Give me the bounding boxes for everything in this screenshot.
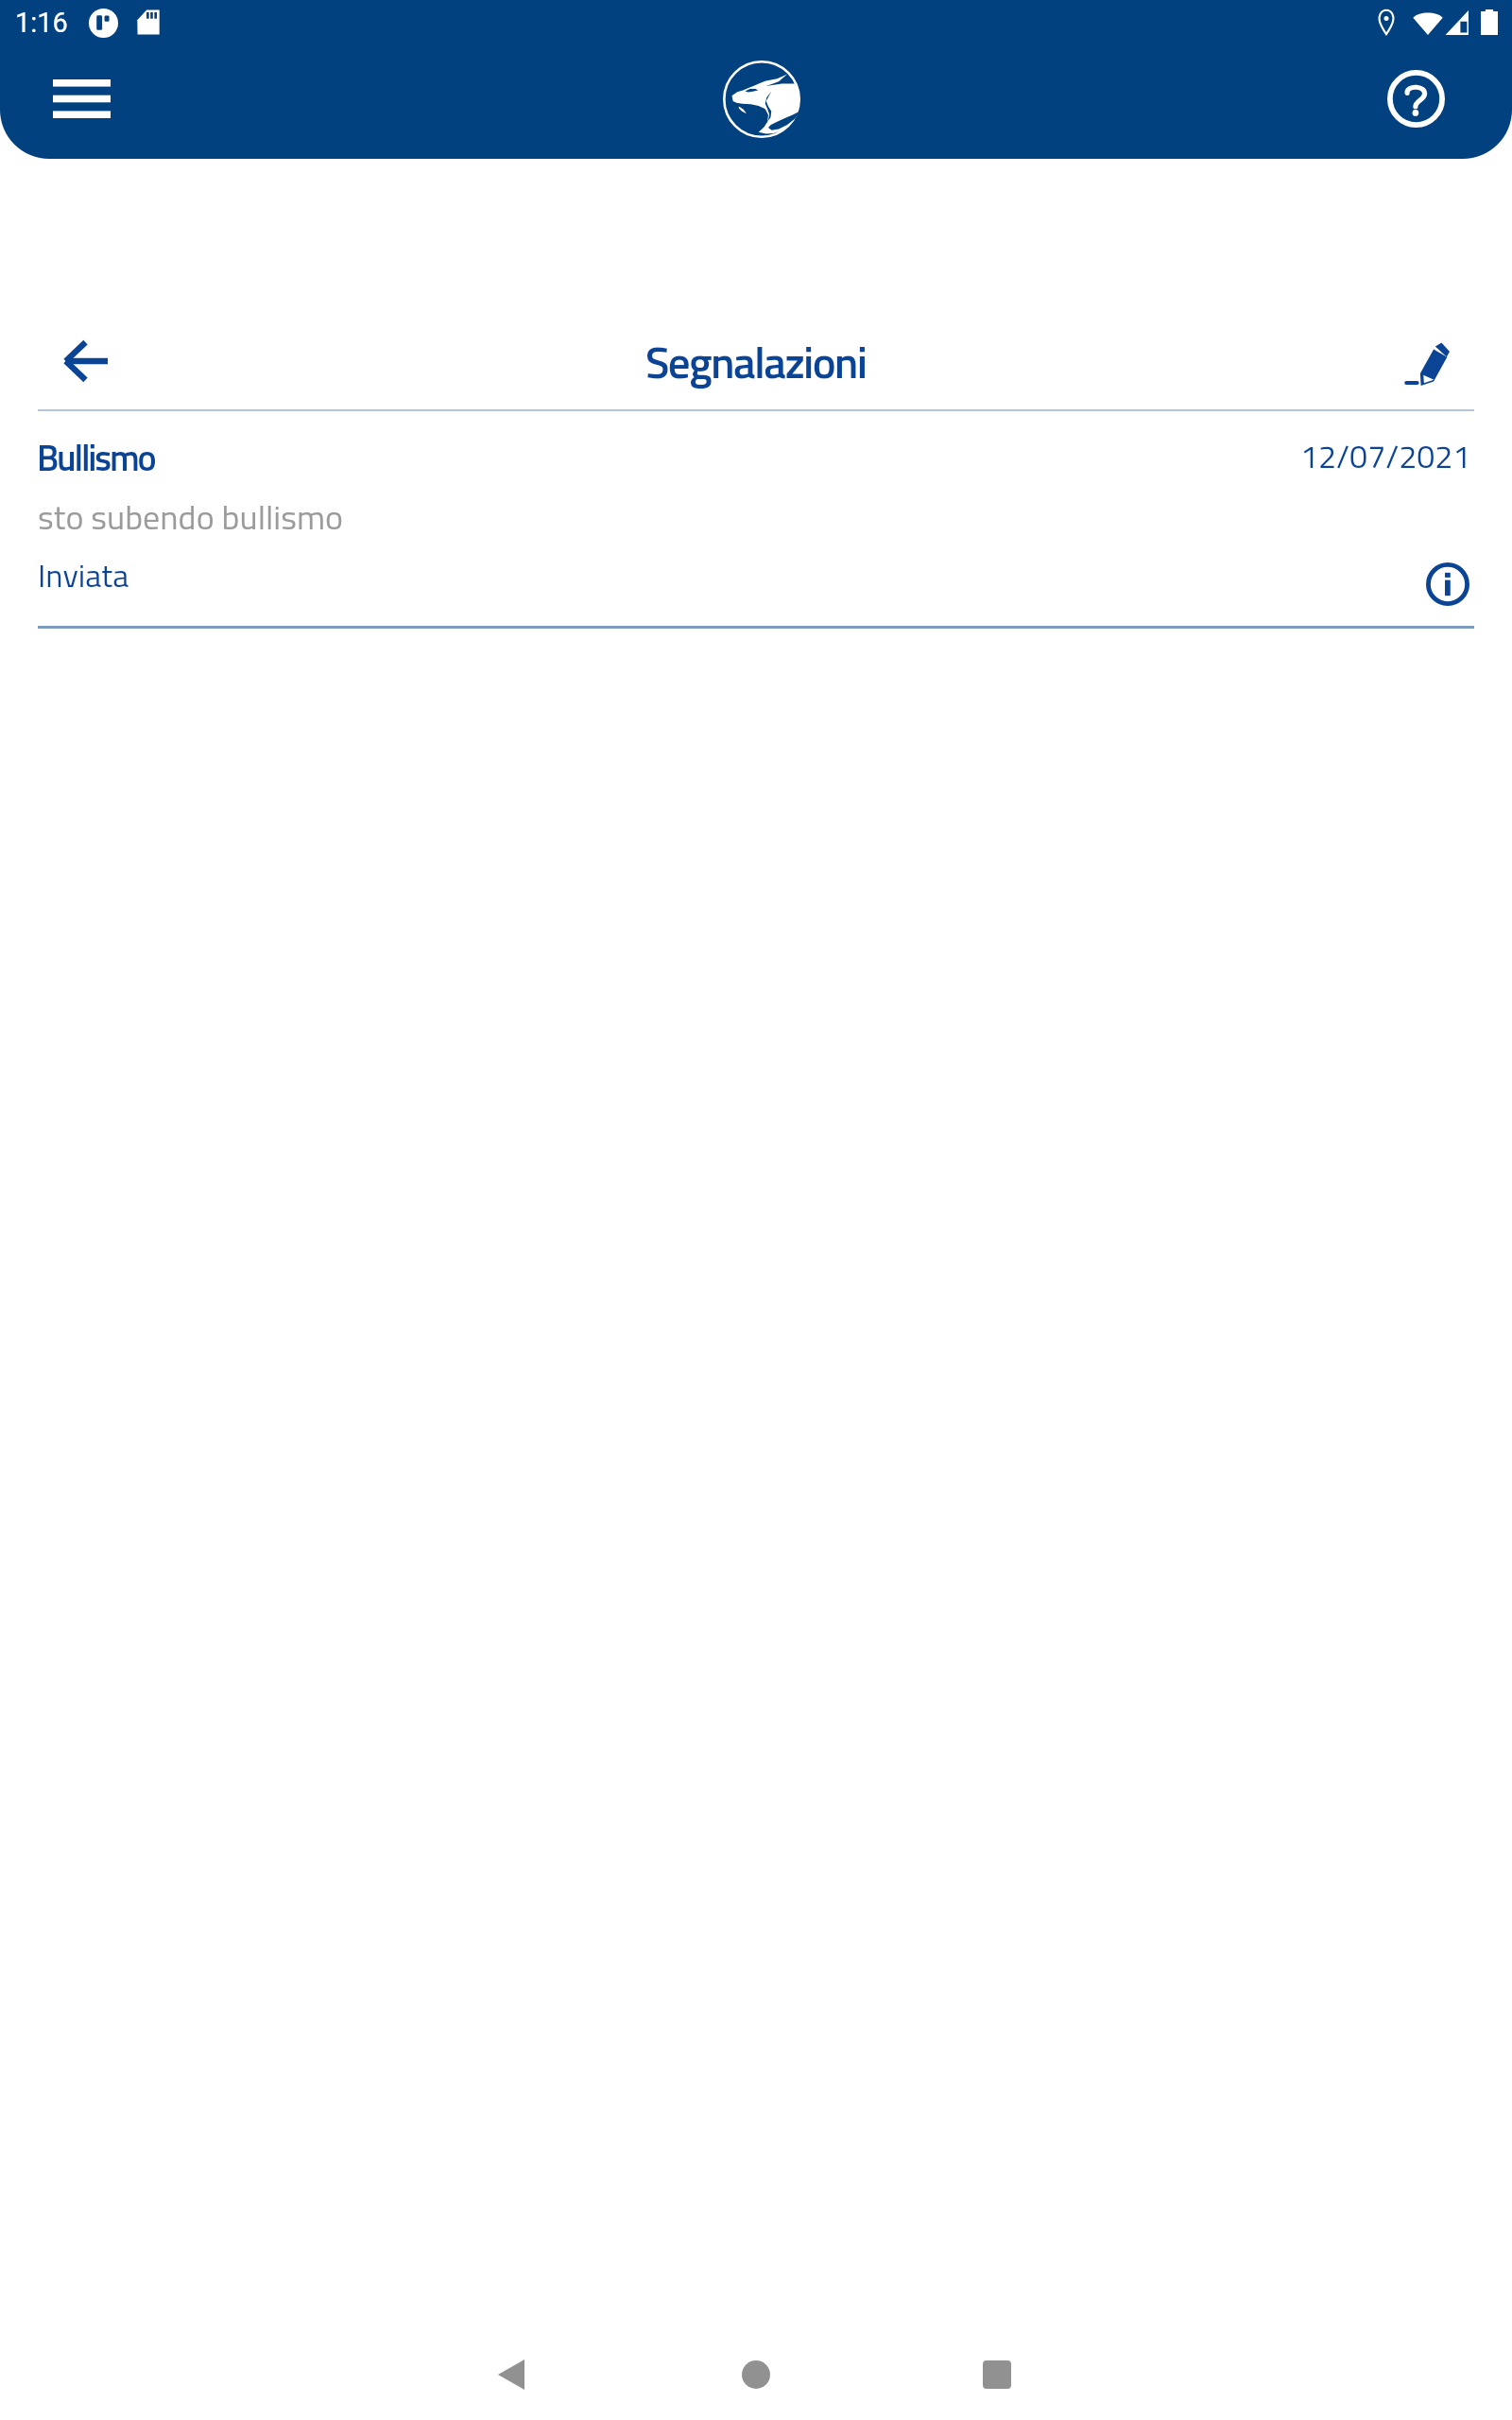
staticText: Segnalazioni <box>645 328 867 395</box>
staticText: 12/07/2021 <box>1300 431 1471 480</box>
staticText: Bullismo <box>37 430 155 485</box>
button[interactable]: Recents <box>932 2335 1064 2414</box>
button[interactable]: Home <box>690 2335 822 2414</box>
button[interactable]: Back <box>446 2335 578 2414</box>
button[interactable]: Back <box>41 321 129 401</box>
button[interactable]: Edit <box>1383 324 1471 404</box>
staticText: Inviata <box>38 550 129 599</box>
button[interactable]: Info <box>1418 555 1477 614</box>
button[interactable]: Help <box>1355 65 1476 131</box>
staticText: 1:16 <box>15 7 68 39</box>
button[interactable]: Bullismo <box>0 412 1512 630</box>
button[interactable]: Menu <box>21 66 142 130</box>
staticText: sto subendo bullismo <box>38 491 343 543</box>
